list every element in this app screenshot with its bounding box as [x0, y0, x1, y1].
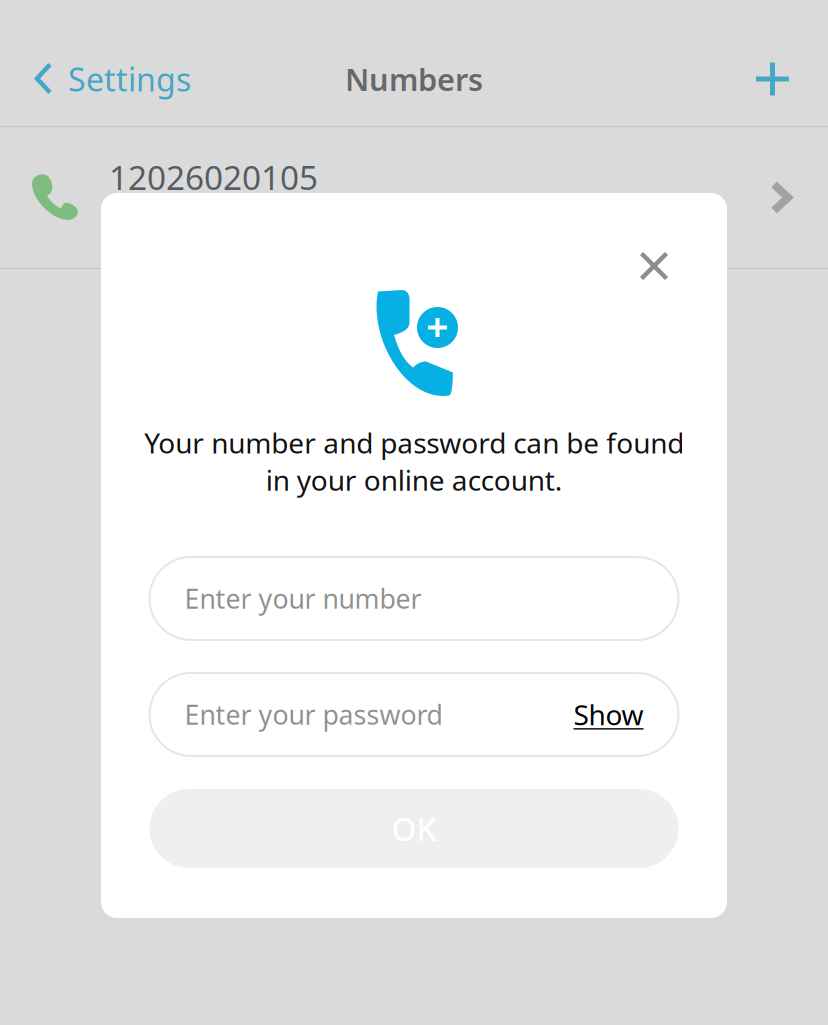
staticText: OK	[391, 807, 436, 850]
staticText: Your number and password can be found in…	[144, 424, 684, 498]
button[interactable]: Close	[613, 225, 694, 306]
staticText: Settings	[68, 58, 191, 100]
button[interactable]: Add number	[730, 32, 828, 126]
button[interactable]: Settings	[0, 32, 211, 126]
staticText: Numbers	[345, 59, 483, 99]
button[interactable]: 12026020105	[0, 127, 828, 268]
staticText: Enter your number	[184, 581, 421, 616]
staticText: 12026020105	[109, 155, 318, 199]
staticText: Show	[573, 696, 643, 733]
button[interactable]: OK	[149, 789, 678, 868]
staticText: Enter your password	[184, 697, 442, 732]
button[interactable]: Show	[573, 696, 643, 733]
